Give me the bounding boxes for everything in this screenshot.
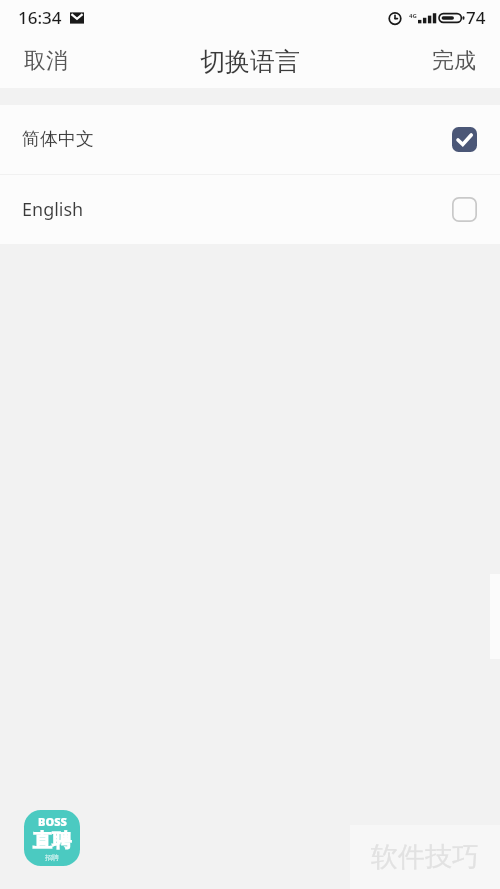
button[interactable]: 简体中文 — [0, 105, 500, 174]
button[interactable]: 取消 — [0, 34, 92, 88]
button[interactable]: Selected — [452, 127, 477, 152]
staticText: 完成 — [432, 47, 476, 75]
staticText: 招聘 — [45, 853, 59, 862]
staticText: 74 — [466, 6, 486, 29]
staticText: 取消 — [24, 47, 68, 75]
staticText: 简体中文 — [22, 128, 94, 151]
staticText: 软件技巧 — [371, 840, 479, 874]
button[interactable]: English — [0, 175, 500, 244]
button[interactable]: Not selected — [452, 197, 477, 222]
staticText: 直聘 — [33, 829, 71, 853]
staticText: 4G — [409, 12, 417, 20]
staticText: 切换语言 — [200, 46, 300, 77]
staticText: 16:34 — [18, 6, 62, 29]
staticText: BOSS — [38, 814, 67, 829]
staticText: English — [22, 197, 84, 222]
button[interactable]: 完成 — [408, 34, 500, 88]
